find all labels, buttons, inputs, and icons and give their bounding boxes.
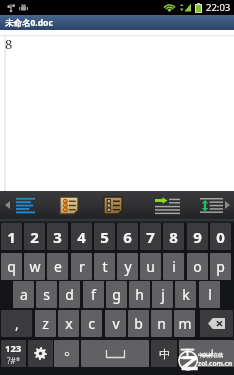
button[interactable]: g [106,281,127,308]
button[interactable]: e [47,253,68,280]
button[interactable]: 0 [210,223,231,250]
button[interactable]: y [117,253,138,280]
staticText: b [134,314,143,333]
button[interactable]: l [199,281,220,308]
staticText: p [216,257,225,276]
button[interactable]: d [59,281,80,308]
staticText: t [102,257,108,276]
staticText: e [54,257,62,276]
button[interactable]: , [1,310,32,337]
button[interactable]: 2 [24,223,45,250]
button[interactable]: p [210,253,231,280]
button[interactable]: Space [81,340,149,367]
staticText: 1 [7,227,16,247]
button[interactable]: o [187,253,208,280]
staticText: d [65,285,74,304]
staticText: f [91,285,96,304]
button[interactable]: 6 [117,223,138,250]
staticText: 未命名0.doc [5,17,53,29]
button[interactable]: u [140,253,161,280]
staticText: 123 [5,342,22,355]
staticText: h [135,285,144,304]
button[interactable]: f [83,281,104,308]
button[interactable]: Indent [149,191,186,219]
button[interactable]: Symbols [54,340,79,367]
button[interactable]: x [58,310,79,337]
button[interactable]: 9 [187,223,208,250]
button[interactable]: 7 [140,223,161,250]
staticText: 6 [123,227,132,247]
staticText: o [193,257,202,276]
button[interactable]: c [81,310,102,337]
button[interactable]: j [152,281,173,308]
button[interactable]: v [105,310,126,337]
staticText: l [208,285,212,304]
button[interactable]: Scroll left [0,191,14,219]
button[interactable]: 1 [1,223,22,250]
staticText: w [29,257,41,276]
staticText: r [79,257,85,276]
staticText: i [172,257,176,276]
button[interactable]: Backspace [200,310,233,337]
staticText: g [112,285,121,304]
staticText: , [15,314,19,333]
button[interactable]: 3 [47,223,68,250]
button[interactable]: 未命名0.doc [0,15,234,30]
button[interactable]: r [71,253,92,280]
button[interactable]: t [94,253,115,280]
staticText: j [161,285,165,304]
button[interactable]: w [24,253,45,280]
staticText: 2 [30,227,39,247]
button[interactable]: 5 [94,223,115,250]
staticText: 8 [169,227,178,247]
button[interactable]: n [151,310,172,337]
button[interactable]: Bullet list [54,191,84,219]
staticText: y [124,257,132,276]
button[interactable]: a [13,281,34,308]
staticText: 5 [100,227,109,247]
staticText: z [42,314,49,333]
button[interactable]: Align left [10,191,41,219]
button[interactable]: k [175,281,196,308]
staticText: s [43,285,50,304]
button[interactable]: s [36,281,57,308]
button[interactable]: q [1,253,22,280]
button[interactable]: b [128,310,149,337]
button[interactable]: 4 [71,223,92,250]
button[interactable]: 中 [151,340,177,367]
staticText: 0 [216,227,225,247]
button[interactable]: Enter [179,340,234,367]
button[interactable]: Settings [28,340,53,367]
staticText: u [146,257,155,276]
staticText: c [88,314,95,333]
staticText: 7 [146,227,155,247]
button[interactable]: Numbers and symbols [1,340,26,367]
staticText: q [7,257,16,276]
staticText: 中 [159,347,170,361]
button[interactable]: 8 [163,223,184,250]
staticText: 中关村在线 [198,352,223,358]
staticText: k [182,285,190,304]
button[interactable]: i [163,253,184,280]
staticText: m [178,314,192,333]
staticText: 4 [77,227,86,247]
staticText: zol.com.cn [198,359,233,368]
staticText: v [112,314,120,333]
button[interactable]: h [129,281,150,308]
button[interactable]: Scroll right [220,191,234,219]
staticText: 9 [193,227,202,247]
button[interactable]: m [174,310,195,337]
button[interactable]: Line spacing [194,191,229,219]
button[interactable]: Numbered list [98,191,128,219]
button[interactable]: z [35,310,56,337]
staticText: 22:03 [206,1,231,14]
staticText: 8 [5,35,13,53]
staticText: ?#* [7,355,21,366]
staticText: 3 [53,227,62,247]
staticText: x [65,314,73,333]
staticText: n [157,314,166,333]
staticText: a [20,285,28,304]
